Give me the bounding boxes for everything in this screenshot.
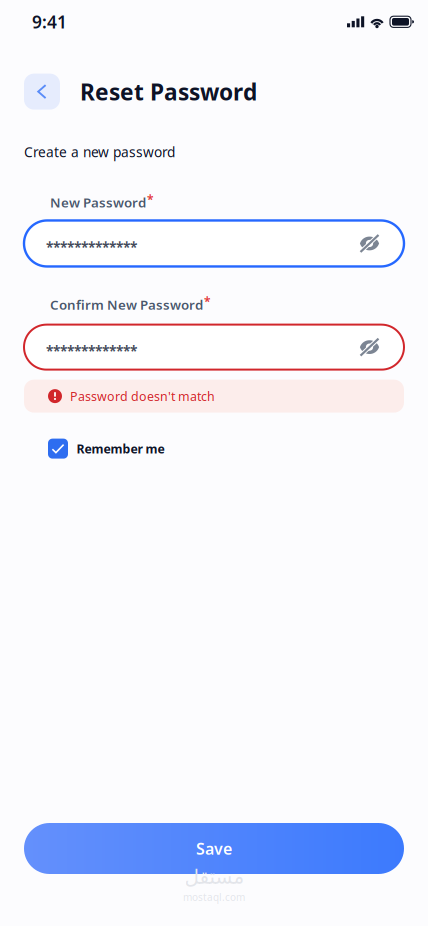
staticText: Save: [196, 838, 232, 859]
button[interactable]: Save: [24, 823, 404, 874]
staticText: *************: [46, 341, 137, 360]
button[interactable]: Show password: [359, 234, 380, 253]
staticText: *: [204, 293, 211, 310]
staticText: Remember me: [76, 440, 164, 457]
staticText: 9:41: [32, 10, 67, 34]
staticText: Reset Password: [80, 76, 257, 107]
staticText: Password doesn't match: [70, 388, 215, 405]
staticText: Create a new password: [24, 143, 175, 161]
button[interactable]: Show password: [359, 338, 380, 357]
staticText: mostaql.com: [183, 890, 245, 904]
button[interactable]: Back: [24, 74, 60, 110]
staticText: مستقل: [184, 865, 244, 888]
staticText: *: [147, 191, 154, 208]
staticText: Confirm New Password: [50, 295, 203, 314]
staticText: *************: [46, 238, 137, 256]
staticText: New Password: [50, 193, 146, 211]
button[interactable]: Remember me: [0, 439, 428, 459]
